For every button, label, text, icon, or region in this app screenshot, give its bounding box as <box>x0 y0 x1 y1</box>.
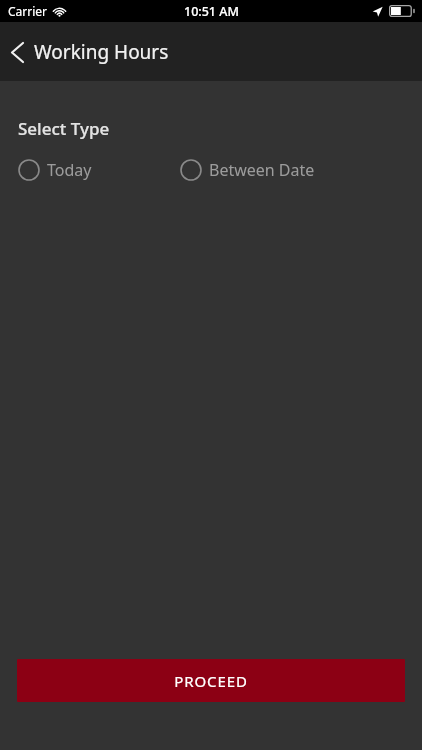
staticText: Between Date <box>209 159 315 181</box>
button[interactable]: Between Date <box>180 159 422 181</box>
staticText: 10:51 AM <box>184 3 239 20</box>
staticText: Carrier <box>8 3 48 19</box>
staticText: Working Hours <box>34 39 169 65</box>
button[interactable]: Today <box>18 159 180 181</box>
staticText: PROCEED <box>174 671 248 691</box>
staticText: Select Type <box>18 117 110 140</box>
button[interactable]: Back <box>0 35 34 69</box>
staticText: Today <box>47 159 92 181</box>
button[interactable]: PROCEED <box>17 659 405 702</box>
